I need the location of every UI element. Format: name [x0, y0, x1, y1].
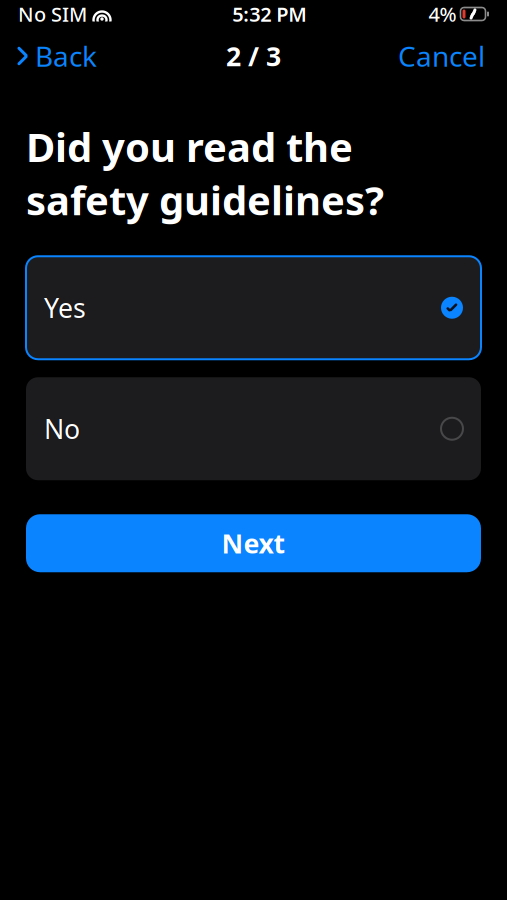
- button[interactable]: Cancel: [376, 31, 507, 81]
- staticText: Did you read the safety guidelines?: [26, 120, 384, 226]
- staticText: Cancel: [398, 37, 485, 75]
- button[interactable]: Yes: [26, 256, 481, 359]
- staticText: Yes: [44, 290, 86, 325]
- staticText: 4%: [428, 1, 456, 27]
- staticText: No SIM: [18, 1, 87, 27]
- staticText: Next: [221, 525, 285, 561]
- staticText: 5:32 PM: [232, 1, 307, 27]
- button[interactable]: No: [26, 377, 481, 480]
- staticText: 2 / 3: [226, 38, 281, 74]
- button[interactable]: Next: [26, 514, 481, 572]
- staticText: Back: [35, 37, 97, 75]
- staticText: No: [44, 411, 80, 446]
- button[interactable]: Back: [0, 31, 113, 81]
